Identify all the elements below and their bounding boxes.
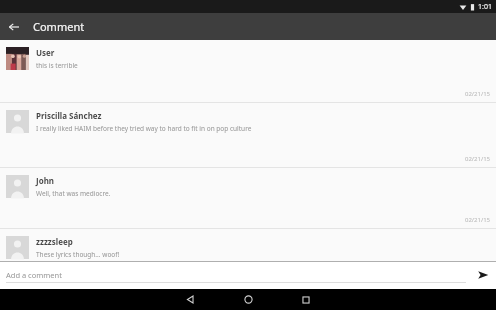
button[interactable]: zzzzsleep: [0, 229, 496, 261]
button[interactable]: Back: [173, 289, 207, 310]
staticText: User: [36, 47, 55, 58]
button[interactable]: Home: [231, 289, 265, 310]
button[interactable]: Recent apps: [289, 289, 323, 310]
staticText: I really liked HAIM before they tried wa…: [36, 124, 252, 133]
button[interactable]: Priscilla Sánchez: [0, 103, 496, 168]
staticText: this is terrible: [36, 61, 78, 70]
staticText: zzzzsleep: [36, 236, 73, 247]
button[interactable]: User: [0, 40, 496, 103]
staticText: Add a comment: [6, 270, 62, 280]
button[interactable]: Send: [472, 264, 494, 286]
staticText: Comment: [33, 19, 85, 34]
staticText: Priscilla Sánchez: [36, 110, 102, 121]
button[interactable]: Add a comment: [6, 270, 466, 280]
button[interactable]: Back: [0, 13, 27, 40]
button[interactable]: John: [0, 168, 496, 229]
staticText: These lyrics though... woof!: [36, 250, 120, 259]
staticText: 02/21/15: [464, 155, 490, 163]
staticText: 02/21/15: [464, 90, 490, 98]
staticText: John: [36, 175, 55, 186]
staticText: Well, that was mediocre.: [36, 189, 111, 198]
staticText: 1:01: [478, 2, 492, 12]
staticText: 02/21/15: [464, 216, 490, 224]
